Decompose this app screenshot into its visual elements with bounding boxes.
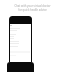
staticText: Chat with your virtual doctor <box>14 4 51 8</box>
staticText: for quick health advice <box>18 8 47 12</box>
